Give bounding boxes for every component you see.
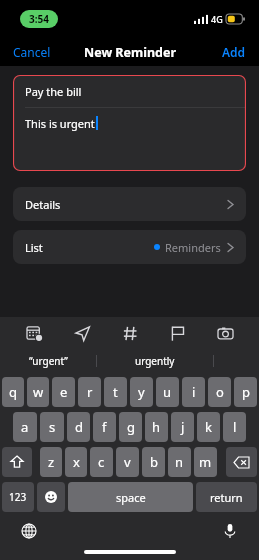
staticText: w — [33, 383, 44, 401]
button[interactable]: Details — [13, 187, 246, 221]
button[interactable]: Add location — [68, 319, 96, 347]
button[interactable]: q — [2, 377, 24, 407]
button[interactable]: space — [68, 482, 193, 512]
staticText: c — [98, 453, 105, 471]
staticText: b — [150, 453, 158, 471]
staticText: urgently — [135, 354, 175, 368]
staticText: g — [127, 418, 135, 436]
staticText: 123 — [9, 490, 27, 504]
button[interactable]: Add — [209, 40, 259, 64]
staticText: u — [163, 383, 172, 401]
button[interactable]: Dictate — [219, 520, 241, 542]
staticText: x — [73, 453, 80, 471]
button[interactable]: Change keyboard — [18, 520, 40, 542]
staticText: “urgent” — [29, 354, 68, 368]
staticText: v — [124, 453, 131, 471]
staticText: j — [181, 418, 185, 436]
button[interactable]: c — [90, 447, 113, 477]
button[interactable]: s — [40, 412, 64, 442]
staticText: Pay the bill — [25, 84, 82, 99]
button[interactable]: Add date — [20, 319, 48, 347]
staticText: i — [192, 383, 196, 401]
staticText: New Reminder — [84, 44, 176, 61]
staticText: List — [25, 240, 43, 255]
button[interactable]: Pay the bill — [13, 75, 246, 171]
button[interactable]: n — [168, 447, 191, 477]
button[interactable]: h — [145, 412, 168, 442]
staticText: f — [102, 418, 107, 436]
button[interactable]: o — [208, 377, 231, 407]
staticText: m — [199, 453, 212, 471]
button[interactable]: t — [104, 377, 127, 407]
staticText: Cancel — [13, 44, 51, 60]
staticText: s — [49, 418, 56, 436]
staticText: This is urgent — [25, 116, 95, 131]
button[interactable]: u — [156, 377, 179, 407]
button[interactable]: m — [194, 447, 217, 477]
staticText: y — [138, 383, 145, 401]
button[interactable]: x — [65, 447, 87, 477]
button[interactable]: d — [67, 412, 90, 442]
button[interactable]: 123 — [2, 482, 34, 512]
button[interactable]: Add photo — [211, 319, 239, 347]
button[interactable]: b — [142, 447, 165, 477]
button[interactable]: l — [223, 412, 246, 442]
button[interactable]: a — [13, 412, 37, 442]
staticText: Reminders — [165, 240, 221, 255]
button[interactable]: j — [171, 412, 194, 442]
button[interactable]: “urgent” — [0, 349, 96, 373]
button[interactable]: z — [40, 447, 62, 477]
button[interactable]: g — [119, 412, 142, 442]
button[interactable]: Backspace — [226, 447, 257, 477]
staticText: l — [233, 418, 237, 436]
button[interactable]: i — [182, 377, 205, 407]
button[interactable]: Shift — [2, 447, 32, 477]
staticText: space — [116, 490, 146, 505]
staticText: 4G — [211, 13, 223, 25]
button[interactable]: p — [234, 377, 257, 407]
button[interactable]: f — [93, 412, 116, 442]
button[interactable]: e — [52, 377, 75, 407]
button[interactable]: Add flag — [163, 319, 191, 347]
button[interactable]: urgently — [97, 349, 213, 373]
staticText: p — [242, 383, 250, 401]
staticText: return — [210, 490, 243, 505]
staticText: h — [152, 418, 161, 436]
button[interactable]: List — [13, 230, 246, 264]
staticText: t — [113, 383, 118, 401]
button[interactable]: Cancel — [0, 40, 64, 64]
staticText: e — [60, 383, 68, 401]
button[interactable]: w — [27, 377, 49, 407]
staticText: k — [205, 418, 212, 436]
button[interactable]: r — [78, 377, 101, 407]
staticText: Details — [25, 197, 61, 212]
button[interactable]: v — [116, 447, 139, 477]
staticText: a — [21, 418, 29, 436]
staticText: r — [87, 383, 93, 401]
staticText: z — [48, 453, 55, 471]
button[interactable]: return — [196, 482, 257, 512]
button[interactable]: k — [197, 412, 220, 442]
button[interactable]: y — [130, 377, 153, 407]
button[interactable]: Add tag — [116, 319, 144, 347]
staticText: d — [75, 418, 83, 436]
staticText: Add — [222, 44, 246, 60]
staticText: 3:54 — [29, 12, 49, 26]
staticText: q — [9, 383, 17, 401]
button[interactable]: Emoji — [37, 482, 65, 512]
staticText: o — [216, 383, 224, 401]
staticText: n — [175, 453, 184, 471]
